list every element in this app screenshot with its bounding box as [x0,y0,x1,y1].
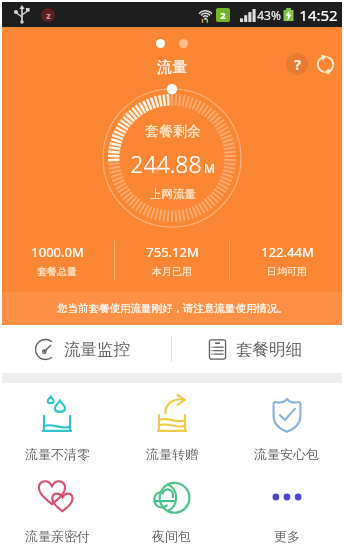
staticText: 套餐剩余 [145,123,201,141]
button[interactable]: 流量监控 [0,325,171,373]
staticText: M [204,160,215,176]
staticText: 43% [257,7,281,23]
button[interactable]: 755.12M [115,243,229,278]
button[interactable]: 流量不清零 [0,394,114,462]
staticText: 您当前套餐使用流量刚好，请注意流量使用情况。 [57,302,288,315]
staticText: 本月已用 [152,265,192,278]
staticText: 755.12M [146,243,199,261]
staticText: 2 [220,9,226,22]
staticText: 14:52 [299,5,338,25]
button[interactable]: Help [286,53,308,75]
button[interactable]: 流量亲密付 [0,476,114,544]
staticText: 122.44M [261,243,314,261]
staticText: 套餐总量 [37,265,77,278]
button[interactable]: 夜间包 [114,476,229,544]
staticText: 套餐明细 [236,339,302,360]
staticText: 流量安心包 [254,446,319,462]
button[interactable]: 1000.0M [0,243,114,278]
button[interactable]: 122.44M [230,243,344,278]
staticText: 更多 [274,528,300,544]
button[interactable]: 更多 [229,476,344,544]
staticText: 1000.0M [31,243,84,261]
staticText: 日均可用 [267,265,307,278]
staticText: 流量亲密付 [25,528,90,544]
button[interactable]: Refresh [314,53,336,75]
staticText: 上网流量 [150,187,196,201]
staticText: 244.88 [130,148,202,179]
staticText: 夜间包 [152,528,191,544]
button[interactable]: 流量转赠 [114,394,229,462]
staticText: z [46,9,51,21]
staticText: 流量 [0,58,344,77]
button[interactable]: 流量安心包 [229,394,344,462]
staticText: 流量不清零 [25,446,90,462]
staticText: 流量转赠 [146,446,198,462]
staticText: 流量监控 [64,339,130,360]
button[interactable]: 套餐明细 [172,325,344,373]
staticText: ? [294,55,301,74]
